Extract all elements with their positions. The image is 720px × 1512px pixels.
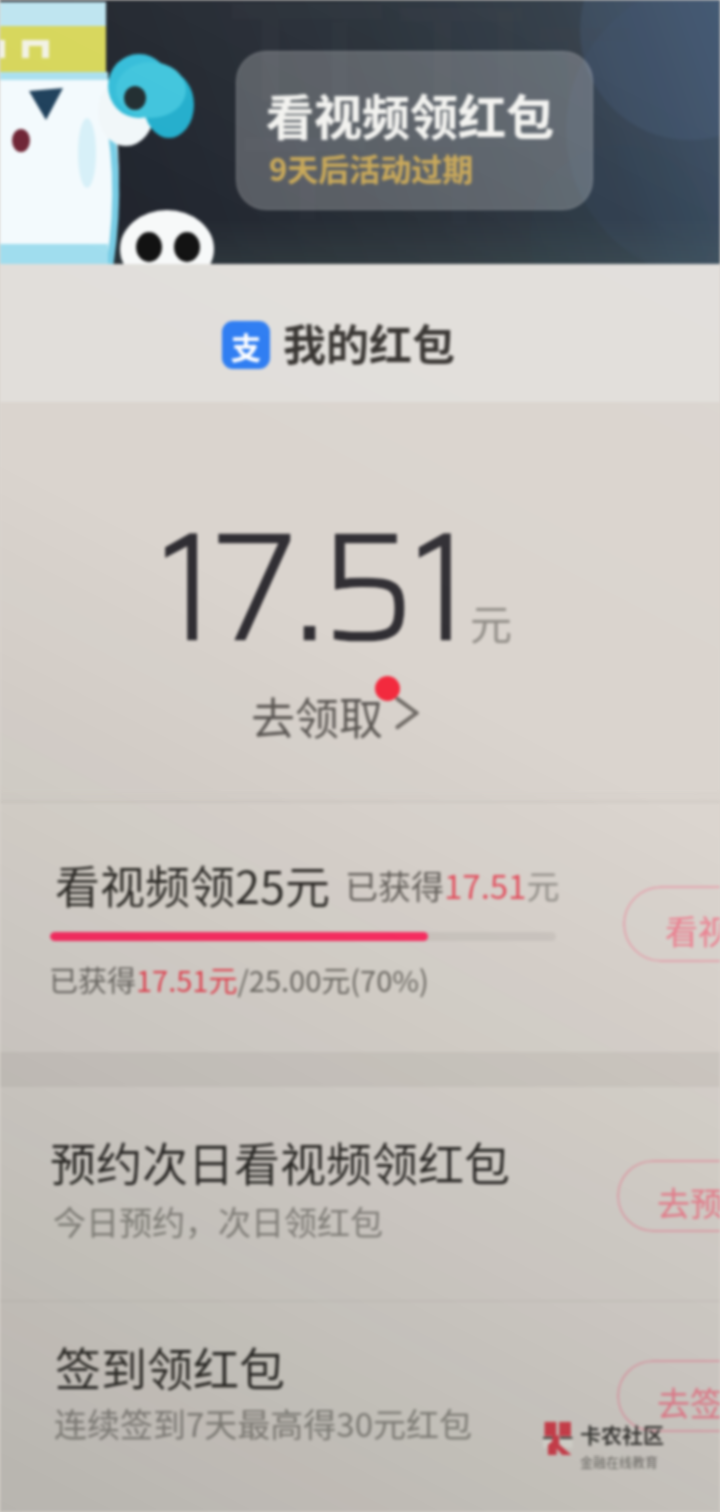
staticText: 支	[231, 324, 261, 367]
staticText: 已获得17.51元	[345, 861, 560, 909]
button[interactable]: 支	[222, 314, 455, 376]
staticText: 元	[470, 591, 513, 652]
button[interactable]	[0, 1087, 720, 1300]
staticText: 17.51	[160, 470, 468, 703]
button[interactable]: 去预约	[617, 1160, 720, 1232]
staticText: 连续签到7天最高得30元红包	[54, 1399, 472, 1447]
staticText: 9天后活动过期	[269, 145, 474, 190]
staticText: 今日预约，次日领红包	[53, 1197, 383, 1245]
staticText: 去领取	[251, 684, 383, 748]
button[interactable]: 去签到	[617, 1360, 720, 1432]
staticText: 卡农社区	[580, 1419, 664, 1449]
button[interactable]: 去领取	[251, 684, 423, 748]
button[interactable]	[0, 1302, 720, 1512]
staticText: 看视频	[665, 906, 720, 954]
staticText: 金融在线教育	[580, 1452, 659, 1471]
staticText: 签到领红包	[55, 1333, 285, 1400]
staticText: 去签到	[657, 1378, 720, 1426]
staticText: 已获得17.51元/25.00元(70%)	[49, 958, 429, 1000]
staticText: 预约次日看视频领红包	[50, 1128, 510, 1195]
staticText: 我的红包	[283, 311, 455, 373]
staticText: 去预约	[657, 1178, 720, 1226]
staticText: 看视频领红包	[266, 79, 555, 149]
staticText: 看视频领25元	[55, 852, 330, 917]
button[interactable]: 看视频	[623, 886, 720, 962]
